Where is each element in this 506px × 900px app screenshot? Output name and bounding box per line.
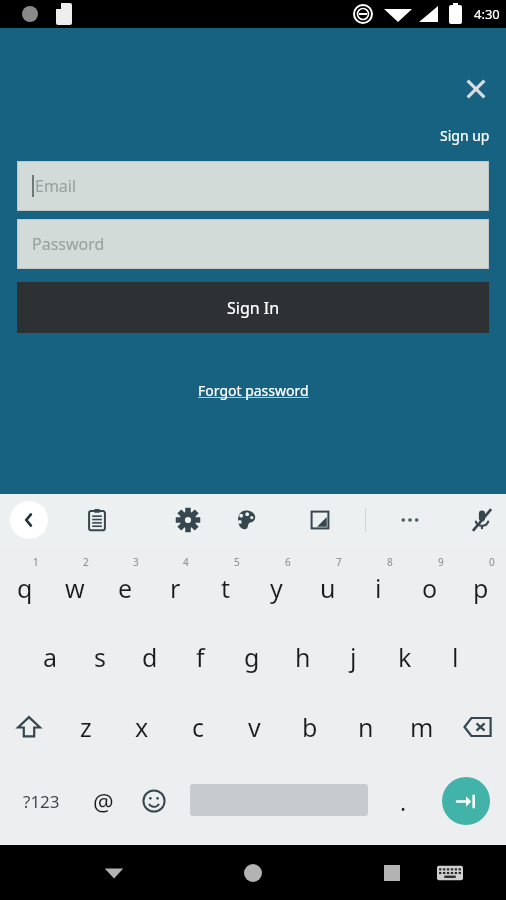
- button[interactable]: Voice input off: [463, 501, 501, 539]
- button[interactable]: g: [226, 622, 277, 692]
- button[interactable]: a: [25, 622, 75, 692]
- button[interactable]: Resize keyboard: [301, 501, 339, 539]
- button[interactable]: Shift: [0, 692, 57, 762]
- staticText: h: [295, 640, 311, 674]
- staticText: 6: [285, 555, 291, 569]
- staticText: w: [65, 571, 85, 605]
- staticText: t: [221, 571, 231, 605]
- button[interactable]: ?123: [8, 762, 74, 840]
- button[interactable]: f: [175, 622, 226, 692]
- staticText: c: [192, 710, 205, 744]
- button[interactable]: h: [277, 622, 328, 692]
- staticText: x: [135, 710, 149, 744]
- button[interactable]: .: [380, 762, 426, 840]
- button[interactable]: Password: [18, 220, 488, 268]
- staticText: y: [270, 571, 283, 605]
- staticText: a: [43, 640, 58, 674]
- staticText: m: [410, 710, 434, 744]
- button[interactable]: x: [114, 692, 170, 762]
- staticText: o: [422, 571, 438, 605]
- button[interactable]: l: [430, 622, 481, 692]
- button[interactable]: j: [328, 622, 379, 692]
- staticText: g: [244, 640, 260, 674]
- staticText: l: [452, 640, 459, 674]
- staticText: Email: [35, 175, 77, 197]
- button[interactable]: 1: [0, 546, 50, 622]
- button[interactable]: Email: [18, 162, 488, 210]
- staticText: 0: [489, 555, 495, 569]
- button[interactable]: Theme: [227, 501, 265, 539]
- button[interactable]: Recents: [370, 845, 414, 900]
- staticText: f: [196, 640, 205, 674]
- staticText: 8: [387, 555, 393, 569]
- staticText: ?123: [23, 790, 60, 813]
- button[interactable]: Enter: [442, 777, 490, 825]
- button[interactable]: Back: [10, 501, 48, 539]
- staticText: 2: [83, 555, 89, 569]
- button[interactable]: Sign In: [17, 282, 489, 333]
- staticText: 5: [234, 555, 240, 569]
- button[interactable]: v: [226, 692, 282, 762]
- staticText: @: [93, 786, 114, 817]
- staticText: z: [80, 710, 92, 744]
- button[interactable]: d: [125, 622, 175, 692]
- staticText: q: [17, 571, 33, 605]
- button[interactable]: k: [379, 622, 430, 692]
- staticText: r: [170, 571, 181, 605]
- button[interactable]: 8: [353, 546, 404, 622]
- button[interactable]: b: [282, 692, 338, 762]
- button[interactable]: Back: [92, 845, 136, 900]
- button[interactable]: Backspace: [450, 692, 506, 762]
- staticText: k: [398, 640, 412, 674]
- button[interactable]: More options: [391, 501, 429, 539]
- button[interactable]: Settings: [169, 501, 207, 539]
- button[interactable]: Home: [231, 845, 275, 900]
- staticText: 4: [183, 555, 189, 569]
- button[interactable]: Sign up: [410, 120, 490, 150]
- staticText: 7: [336, 555, 342, 569]
- staticText: 1: [33, 555, 39, 569]
- button[interactable]: 9: [404, 546, 455, 622]
- staticText: v: [248, 710, 261, 744]
- button[interactable]: m: [394, 692, 450, 762]
- button[interactable]: Emoji: [128, 762, 180, 840]
- button[interactable]: Forgot password: [0, 375, 506, 405]
- button[interactable]: Close: [456, 69, 496, 109]
- button[interactable]: c: [170, 692, 226, 762]
- staticText: p: [473, 571, 489, 605]
- button[interactable]: Switch keyboard: [428, 845, 472, 900]
- staticText: Forgot password: [198, 381, 309, 400]
- button[interactable]: 5: [200, 546, 251, 622]
- staticText: n: [358, 710, 374, 744]
- staticText: Sign In: [227, 297, 280, 319]
- button[interactable]: 0: [455, 546, 506, 622]
- button[interactable]: s: [75, 622, 125, 692]
- staticText: e: [118, 571, 133, 605]
- button[interactable]: 6: [251, 546, 302, 622]
- staticText: d: [142, 640, 158, 674]
- button[interactable]: n: [338, 692, 394, 762]
- staticText: 9: [438, 555, 444, 569]
- staticText: u: [320, 571, 336, 605]
- button[interactable]: z: [57, 692, 114, 762]
- button[interactable]: Clipboard: [78, 501, 116, 539]
- staticText: .: [400, 786, 407, 817]
- staticText: 3: [133, 555, 139, 569]
- staticText: Sign up: [440, 126, 490, 145]
- button[interactable]: 4: [150, 546, 200, 622]
- button[interactable]: 7: [302, 546, 353, 622]
- button[interactable]: 2: [50, 546, 100, 622]
- staticText: i: [375, 571, 382, 605]
- button[interactable]: 3: [100, 546, 150, 622]
- button[interactable]: @: [78, 762, 128, 840]
- staticText: 4:30: [474, 5, 500, 23]
- staticText: j: [350, 640, 357, 674]
- staticText: s: [94, 640, 106, 674]
- staticText: b: [302, 710, 318, 744]
- staticText: Password: [32, 233, 105, 255]
